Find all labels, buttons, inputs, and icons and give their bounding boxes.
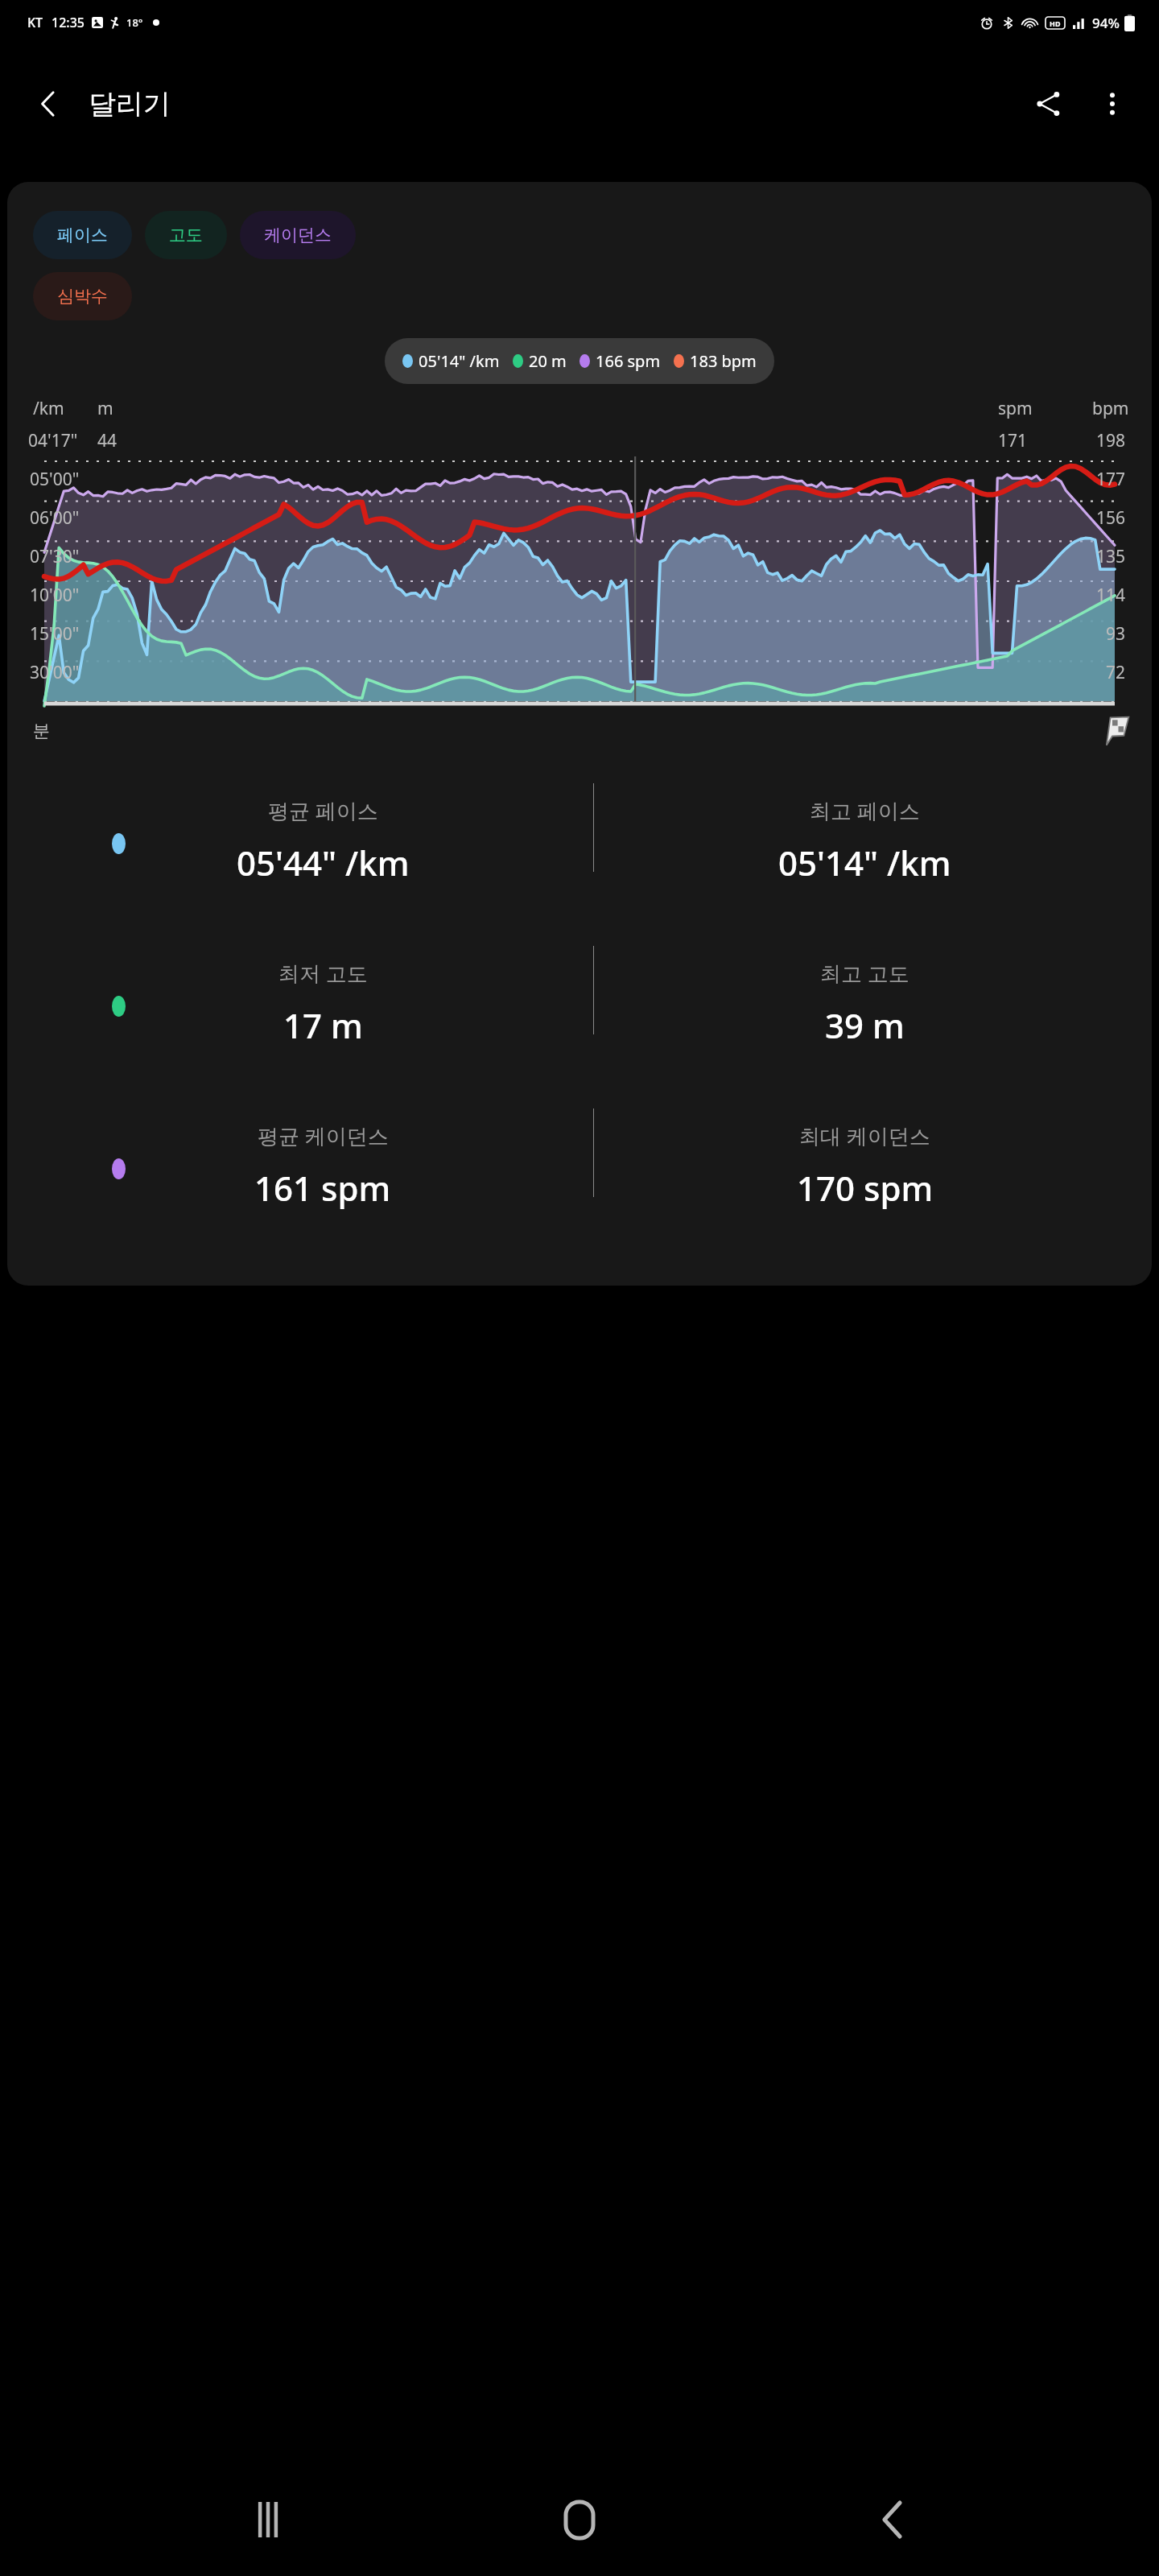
staticText: 171 [998,429,1028,452]
button[interactable]: 심박수 [33,272,132,320]
staticText: 17 m [283,1002,363,1048]
staticText: 114 [1096,584,1126,607]
staticText: 평균 페이스 [268,796,378,825]
staticText: 최저 고도 [278,959,368,988]
button[interactable]: 케이던스 [240,211,356,259]
staticText: 170 spm [797,1165,934,1211]
staticText: 페이스 [57,225,108,246]
staticText: 12:35 [52,14,85,31]
button[interactable]: Back [848,2475,936,2564]
button[interactable]: Share [1016,72,1080,136]
staticText: 05'00" [30,468,80,491]
staticText: 18° [126,15,143,30]
staticText: 166 spm [596,350,661,372]
button[interactable]: Home [535,2475,624,2564]
staticText: 94% [1092,14,1120,32]
staticText: 05'14" /km [419,350,500,372]
staticText: 10'00" [30,584,80,607]
staticText: 심박수 [57,286,108,307]
staticText: 39 m [825,1002,905,1048]
staticText: 최고 페이스 [810,796,920,825]
button[interactable]: 페이스 [33,211,132,259]
staticText: 07'30" [30,545,80,568]
staticText: 93 [1106,622,1126,646]
staticText: bpm [1092,397,1129,420]
staticText: 30'00" [30,661,80,684]
staticText: 달리기 [89,87,171,122]
staticText: 156 [1096,506,1126,530]
staticText: 고도 [169,225,203,246]
staticText: 20 m [529,350,567,372]
staticText: /km [33,397,64,420]
staticText: 05'14" /km [778,840,951,885]
staticText: 183 bpm [690,350,757,372]
button[interactable]: Recent apps [224,2475,312,2564]
staticText: HD [1050,19,1061,28]
button[interactable]: More options [1080,72,1145,136]
staticText: m [97,397,113,420]
button[interactable]: Back [16,72,80,136]
button[interactable]: 05'14" /km [385,338,774,384]
staticText: 분 [33,720,50,741]
staticText: 177 [1096,468,1126,491]
staticText: 135 [1096,545,1126,568]
staticText: 15'00" [30,622,80,646]
staticText: 161 spm [254,1165,391,1211]
staticText: 05'44" /km [237,840,410,885]
staticText: KT [27,14,43,31]
staticText: 케이던스 [264,225,332,246]
staticText: 04'17" [28,429,78,452]
staticText: 72 [1106,661,1126,684]
staticText: 44 [97,429,118,452]
button[interactable]: 고도 [145,211,227,259]
staticText: 198 [1096,429,1126,452]
staticText: 06'00" [30,506,80,530]
staticText: 평균 케이던스 [258,1121,389,1150]
staticText: 최대 케이던스 [799,1121,930,1150]
staticText: 최고 고도 [820,959,909,988]
staticText: spm [998,397,1033,420]
